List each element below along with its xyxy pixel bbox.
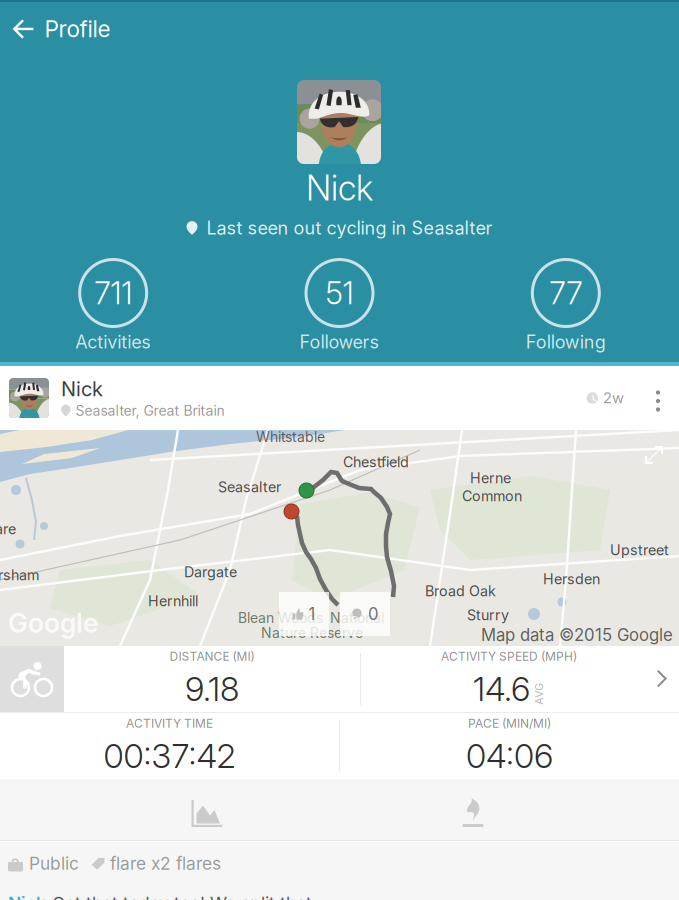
- staticText: DISTANCE (MI): [169, 649, 254, 664]
- staticText: Activities: [75, 331, 151, 353]
- staticText: Whitstable: [256, 428, 325, 445]
- staticText: 0: [368, 604, 379, 624]
- button[interactable]: Give a flare: [413, 782, 533, 843]
- staticText: ACTIVITY SPEED (MPH): [441, 649, 577, 664]
- staticText: Hersden: [543, 570, 600, 588]
- staticText: Seasalter: [218, 478, 281, 496]
- button[interactable]: Expand map: [629, 430, 679, 480]
- button[interactable]: Show charts: [147, 783, 267, 844]
- staticText: Got that today too! We split that: [52, 893, 312, 900]
- staticText: Common: [462, 487, 522, 505]
- staticText: 00:37:42: [103, 736, 235, 776]
- staticText: 04:06: [466, 736, 553, 776]
- staticText: Map data ©2015 Google: [481, 625, 673, 645]
- staticText: 2w: [603, 389, 624, 407]
- staticText: Sturry: [467, 606, 509, 624]
- staticText: 1: [308, 604, 315, 624]
- staticText: 51: [325, 274, 353, 311]
- staticText: Dargate: [184, 563, 237, 581]
- button[interactable]: More options: [637, 366, 679, 430]
- staticText: Seasalter, Great Britain: [75, 402, 224, 419]
- staticText: Upstreet: [610, 541, 669, 559]
- staticText: Chestfield: [343, 453, 409, 471]
- staticText: ACTIVITY TIME: [126, 716, 213, 731]
- staticText: Followers: [299, 331, 379, 353]
- staticText: Faversham: [0, 566, 39, 584]
- staticText: 9.18: [185, 669, 239, 709]
- staticText: Nick: [8, 893, 46, 900]
- button[interactable]: DISTANCE (MI): [0, 646, 679, 712]
- staticText: AVG: [528, 687, 550, 700]
- staticText: Public: [29, 853, 79, 874]
- button[interactable]: 77: [453, 258, 679, 353]
- staticText: Herne: [470, 469, 511, 487]
- staticText: Nick: [61, 377, 103, 401]
- staticText: flare x2 flares: [110, 853, 221, 874]
- staticText: National: [330, 609, 384, 626]
- staticText: Hernhill: [148, 592, 198, 610]
- button[interactable]: Profile: [0, 1, 124, 57]
- staticText: Nick: [306, 167, 373, 209]
- staticText: Nature Reserve: [261, 624, 363, 641]
- staticText: Profile: [44, 15, 110, 43]
- staticText: Broad Oak: [425, 582, 496, 600]
- staticText: Google: [8, 607, 98, 639]
- staticText: Last seen out cycling in Seasalter: [206, 217, 492, 239]
- staticText: 14.6: [473, 669, 530, 709]
- staticText: Blean Woods: [238, 609, 323, 626]
- staticText: 77: [549, 274, 582, 311]
- staticText: Oare: [0, 520, 16, 538]
- staticText: 711: [94, 274, 132, 311]
- button[interactable]: Kudos: [279, 592, 329, 636]
- button[interactable]: Comments: [340, 592, 390, 636]
- staticText: PACE (MIN/MI): [468, 716, 551, 731]
- staticText: Following: [526, 331, 606, 353]
- button[interactable]: 51: [226, 258, 453, 353]
- button[interactable]: 711: [0, 258, 226, 353]
